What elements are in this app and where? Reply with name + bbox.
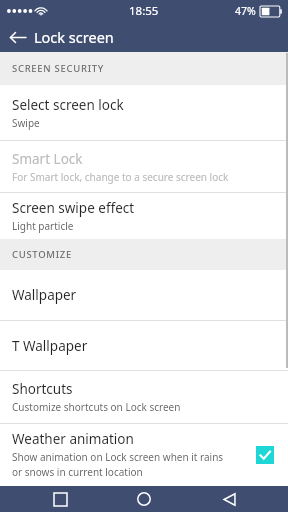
button[interactable]: Back	[204, 486, 254, 512]
staticText: Shortcuts	[12, 380, 73, 398]
staticText: 18:55	[129, 3, 159, 19]
staticText: Swipe	[12, 116, 40, 130]
button[interactable]: T Wallpaper	[0, 321, 288, 370]
staticText: T Wallpaper	[12, 337, 88, 355]
button[interactable]: Back	[0, 22, 34, 52]
button[interactable]: Weather animation toggle	[256, 446, 274, 464]
staticText: Wallpaper	[12, 286, 77, 304]
button[interactable]: Smart Lock	[0, 141, 288, 192]
staticText: Customize shortcuts on Lock screen	[12, 400, 181, 414]
button[interactable]: Weather animation	[0, 424, 288, 485]
staticText: Select screen lock	[12, 96, 124, 114]
staticText: Weather animation	[12, 430, 134, 448]
button[interactable]: Recent apps	[35, 486, 85, 512]
staticText: Screen swipe effect	[12, 199, 135, 217]
staticText: SCREEN SECURITY	[12, 62, 105, 75]
staticText: Show animation on Lock screen when it ra…	[12, 450, 224, 464]
staticText: or snows in current location	[12, 465, 143, 479]
staticText: Light particle	[12, 219, 74, 233]
button[interactable]: Wallpaper	[0, 270, 288, 320]
button[interactable]: Shortcuts	[0, 371, 288, 423]
staticText: 47%	[235, 4, 256, 18]
staticText: Lock screen	[34, 27, 114, 47]
staticText: Smart Lock	[12, 150, 83, 168]
button[interactable]: Home	[119, 486, 169, 512]
button[interactable]: Select screen lock	[0, 85, 288, 140]
button[interactable]: Screen swipe effect	[0, 193, 288, 239]
staticText: CUSTOMIZE	[12, 248, 72, 261]
staticText: For Smart lock, change to a secure scree…	[12, 170, 229, 184]
